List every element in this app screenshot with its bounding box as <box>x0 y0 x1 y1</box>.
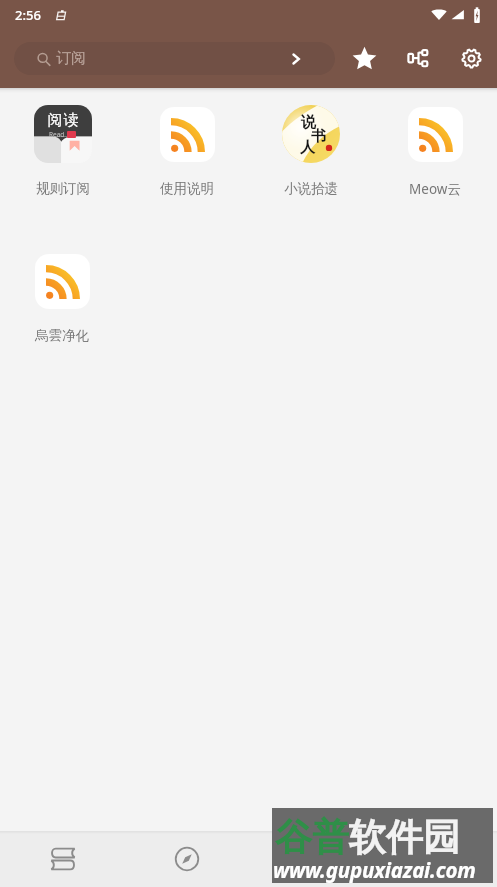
staticText: 使用说明 <box>160 180 214 197</box>
button[interactable]: Explore <box>125 831 249 887</box>
staticText: 规则订阅 <box>36 180 90 197</box>
staticText: 小说拾遗 <box>284 180 338 197</box>
staticText: 订阅 <box>56 49 86 68</box>
button[interactable]: Settings <box>449 36 493 80</box>
button[interactable]: Bookshelf <box>0 831 125 887</box>
staticText: Meow云 <box>409 180 461 198</box>
button[interactable]: 订阅 <box>14 42 335 75</box>
button[interactable]: 烏雲净化 <box>0 252 124 344</box>
staticText: 谷普 <box>275 814 349 861</box>
staticText: Read <box>49 130 65 139</box>
staticText: 烏雲净化 <box>35 327 89 344</box>
button[interactable]: 使用说明 <box>125 105 249 197</box>
button[interactable]: Meow云 <box>373 105 497 198</box>
staticText: 人 <box>300 138 315 157</box>
staticText: 2:56 <box>15 6 41 24</box>
staticText: 书 <box>311 127 326 146</box>
staticText: 阅读 <box>47 111 79 130</box>
staticText: www.gupuxiazai.com <box>273 856 476 884</box>
button[interactable]: 说 <box>249 105 373 197</box>
button[interactable]: Groups <box>396 36 440 80</box>
staticText: 说 <box>301 113 316 132</box>
staticText: 软件园 <box>349 814 460 861</box>
button[interactable]: Favorites <box>342 36 386 80</box>
button[interactable]: 阅读 <box>0 105 125 197</box>
